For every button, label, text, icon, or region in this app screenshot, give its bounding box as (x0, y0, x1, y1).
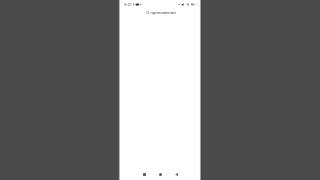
button[interactable]: Home (152, 168, 168, 180)
button[interactable]: Recents (136, 168, 152, 180)
button[interactable]: Back (168, 168, 184, 180)
staticText: О приложении (146, 10, 176, 16)
staticText: 9:41 (124, 2, 132, 7)
